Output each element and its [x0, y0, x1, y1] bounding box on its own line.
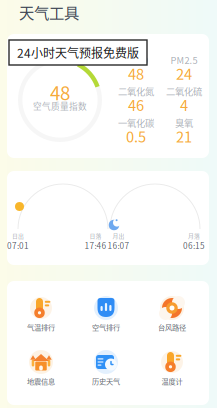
staticText: 24 — [176, 63, 192, 84]
staticText: 07:01 — [7, 239, 29, 251]
staticText: 48 — [50, 78, 70, 105]
staticText: 17:46 — [84, 239, 106, 251]
staticText: 臭氧 — [175, 116, 193, 129]
staticText: 06:15 — [183, 239, 205, 251]
staticText: 日落 — [89, 232, 101, 240]
staticText: 温度计 — [161, 376, 182, 386]
staticText: 48 — [128, 63, 144, 84]
staticText: PM2.5 — [170, 53, 197, 67]
staticText: 46 — [128, 94, 144, 115]
staticText: 二氧化氮 — [118, 84, 154, 98]
button[interactable]: 地震信息 — [0, 0, 217, 408]
staticText: 4 — [180, 94, 188, 115]
staticText: 一氧化碳 — [118, 116, 154, 129]
staticText: 空气质量指数 — [33, 100, 87, 112]
button[interactable]: 空气排行 — [0, 0, 217, 408]
staticText: 16:07 — [107, 239, 129, 251]
staticText: 历史天气 — [92, 376, 120, 386]
button[interactable]: 温度计 — [0, 0, 217, 408]
staticText: PM10 — [124, 53, 148, 67]
staticText: 二氧化硫 — [166, 84, 202, 98]
button[interactable]: 气温排行 — [0, 0, 217, 408]
staticText: 空气排行 — [92, 322, 120, 332]
staticText: 21 — [176, 125, 192, 147]
staticText: 月落 — [188, 232, 200, 240]
staticText: 0.5 — [126, 125, 146, 147]
button[interactable]: 历史天气 — [0, 0, 217, 408]
staticText: 日出 — [12, 232, 24, 240]
staticText: 气温排行 — [27, 322, 55, 332]
button[interactable]: 台风路径 — [0, 0, 217, 408]
staticText: 台风路径 — [158, 322, 186, 332]
staticText: 月出 — [112, 232, 124, 240]
staticText: 地震信息 — [27, 376, 55, 386]
staticText: 24小时天气预报免费版 — [17, 44, 139, 61]
staticText: 天气工具 — [19, 1, 79, 23]
